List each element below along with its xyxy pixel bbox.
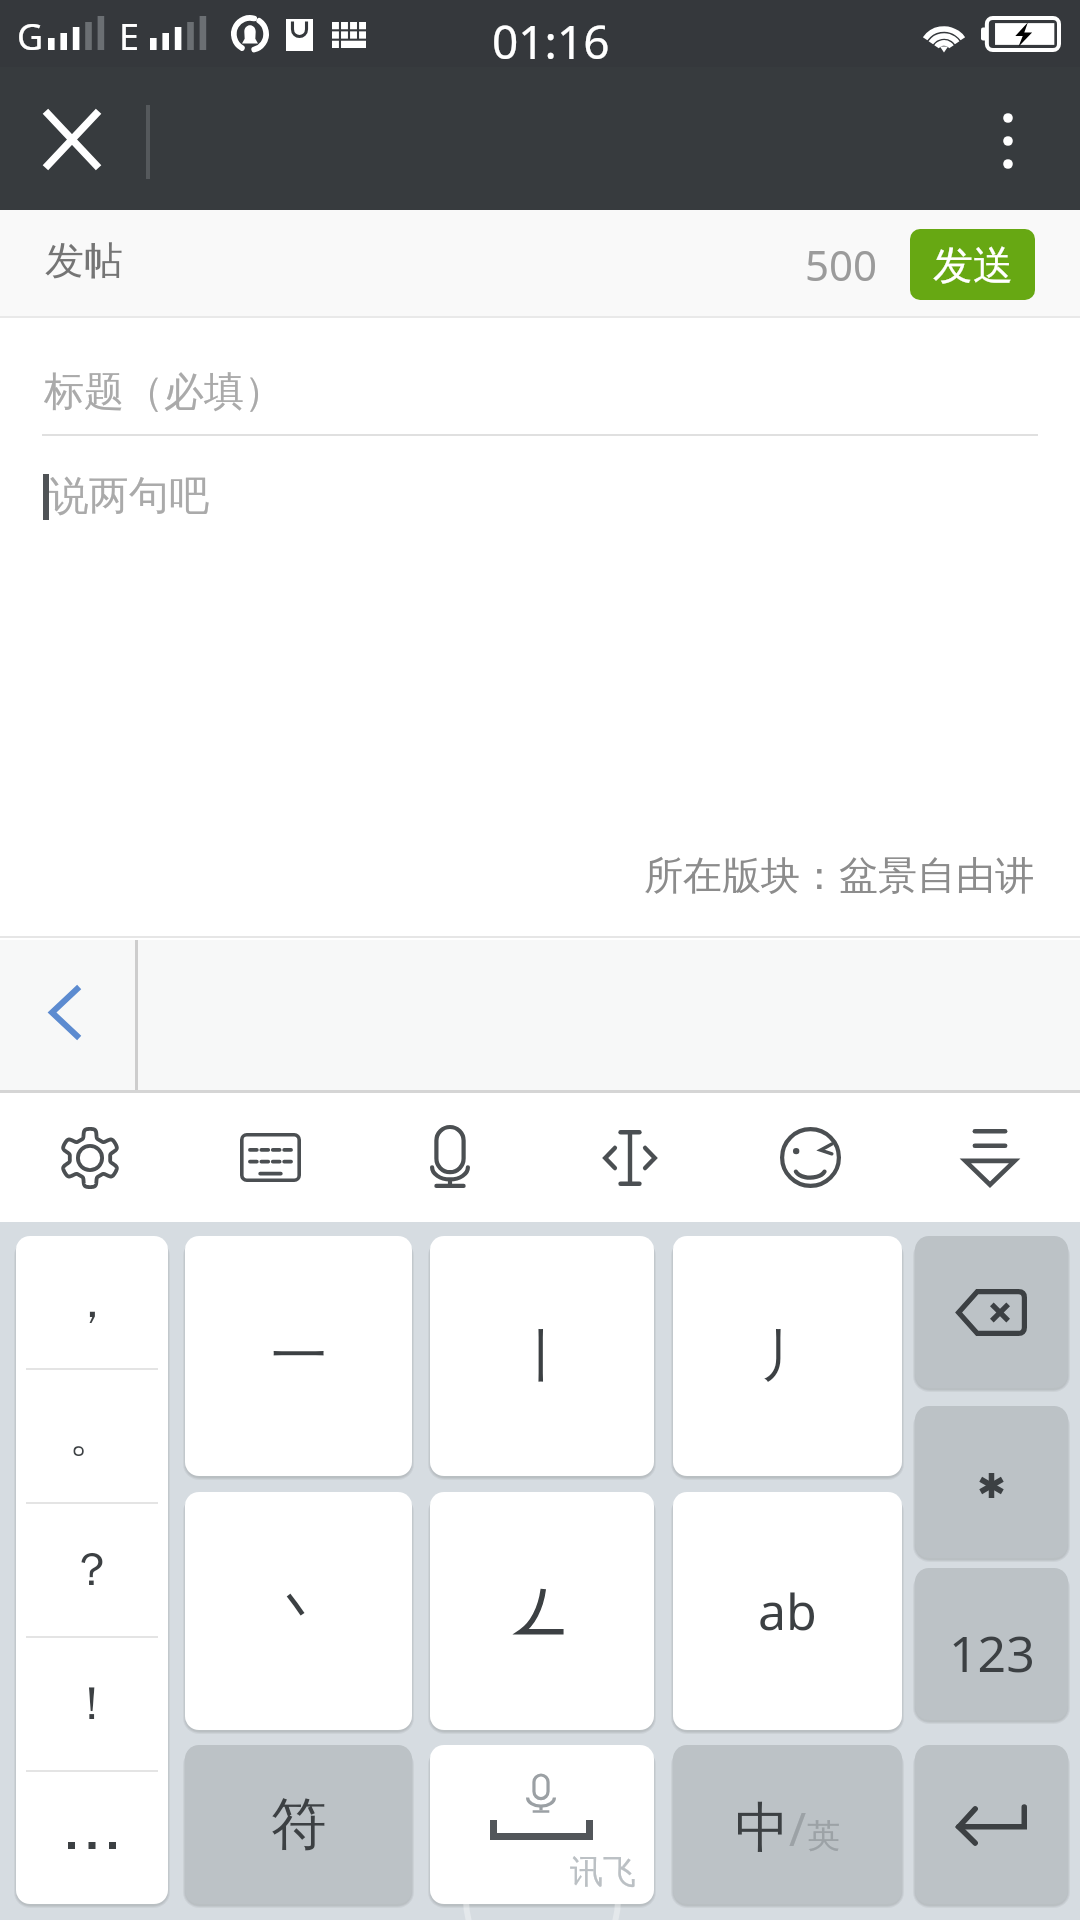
staticText: E [119, 12, 140, 61]
button[interactable]: 中 [673, 1745, 902, 1904]
staticText: 丿 [760, 1321, 816, 1392]
button[interactable]: 讯飞 [430, 1745, 654, 1904]
button[interactable] [16, 1772, 168, 1904]
staticText: ab [758, 1577, 817, 1645]
staticText: 发帖 [45, 236, 123, 285]
button[interactable]: Previous candidates [0, 940, 136, 1093]
button[interactable]: 符 [185, 1745, 412, 1904]
staticText: ！ [69, 1675, 115, 1733]
staticText: ？ [69, 1541, 115, 1599]
staticText: 讯飞 [570, 1851, 636, 1893]
staticText: 中 [735, 1794, 789, 1862]
button[interactable]: 丿 [673, 1236, 902, 1476]
button[interactable]: Emoji [720, 1093, 900, 1222]
button[interactable]: ab [673, 1492, 902, 1730]
button[interactable]: Settings [0, 1093, 180, 1222]
staticText: 123 [949, 1619, 1035, 1687]
button[interactable]: Star [915, 1406, 1068, 1558]
staticText: 英 [807, 1815, 840, 1857]
button[interactable]: Move cursor [540, 1093, 720, 1222]
button[interactable]: Numbers [915, 1568, 1068, 1720]
button[interactable]: Enter [915, 1745, 1068, 1904]
staticText: 所在版块：盆景自由讲 [644, 851, 1034, 900]
staticText: 。 [69, 1407, 115, 1465]
button[interactable] [430, 1492, 654, 1730]
button[interactable]: Hide keyboard [900, 1093, 1080, 1222]
staticText: / [789, 1797, 807, 1860]
button[interactable]: Voice input [360, 1093, 540, 1222]
staticText: 标题（必填） [44, 366, 284, 416]
staticText: 发送 [933, 240, 1013, 290]
button[interactable]: Keyboard layout [180, 1093, 360, 1222]
button[interactable]: 一 [185, 1236, 412, 1476]
button[interactable]: 。 [16, 1370, 168, 1502]
staticText: 01:16 [492, 10, 610, 73]
staticText: 说两句吧 [49, 470, 209, 520]
staticText: 一 [271, 1321, 327, 1392]
button[interactable]: Close [0, 67, 146, 210]
staticText: ， [69, 1273, 115, 1331]
button[interactable]: 发送 [910, 229, 1035, 300]
staticText: 丨 [514, 1321, 570, 1392]
staticText: 丶 [271, 1576, 327, 1647]
staticText: 符 [271, 1789, 327, 1860]
button[interactable]: ？ [16, 1504, 168, 1636]
button[interactable]: More options [960, 67, 1080, 210]
button[interactable]: 丶 [185, 1492, 412, 1730]
button[interactable]: Backspace [915, 1236, 1068, 1388]
button[interactable]: 丨 [430, 1236, 654, 1476]
staticText: G [17, 12, 44, 61]
button[interactable]: ， [16, 1236, 168, 1368]
staticText: 500 [805, 236, 878, 293]
button[interactable]: ！ [16, 1638, 168, 1770]
